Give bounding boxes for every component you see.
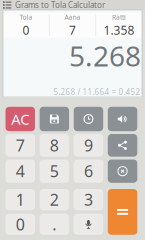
staticText: 8 <box>50 135 59 156</box>
staticText: 7 <box>69 22 76 38</box>
button[interactable]: 0 <box>5 214 35 235</box>
button[interactable]: 3 <box>74 189 103 210</box>
button[interactable]: . <box>40 214 69 235</box>
staticText: 5.268 <box>69 37 141 74</box>
staticText: AC <box>11 109 29 129</box>
staticText: Ratti <box>112 13 126 22</box>
button[interactable]: 8 <box>40 134 69 157</box>
button[interactable]: Share <box>108 134 137 157</box>
staticText: 1 <box>16 189 25 210</box>
button[interactable]: AC <box>5 107 35 131</box>
staticText: 0 <box>16 214 25 235</box>
staticText: 9 <box>84 135 93 156</box>
staticText: Grams to Tola Calculator <box>15 0 105 10</box>
button[interactable]: Save <box>40 107 69 131</box>
staticText: Tola <box>19 13 32 22</box>
staticText: 2 <box>50 189 59 210</box>
staticText: 0 <box>22 22 29 38</box>
button[interactable]: Delete <box>108 159 137 183</box>
button[interactable]: 5 <box>40 159 69 183</box>
button[interactable]: Equals <box>108 189 137 235</box>
staticText: 5 <box>50 160 59 182</box>
button[interactable]: 2 <box>40 189 69 210</box>
button[interactable]: 1 <box>5 189 35 210</box>
button[interactable]: 7 <box>5 134 35 157</box>
button[interactable]: Voice input <box>74 214 103 235</box>
button[interactable]: 6 <box>74 159 103 183</box>
button[interactable]: History <box>74 107 103 131</box>
staticText: 6 <box>84 160 93 182</box>
button[interactable]: 9 <box>74 134 103 157</box>
staticText: 7 <box>16 135 25 156</box>
staticText: 1.358 <box>104 22 135 38</box>
staticText: . <box>52 214 56 235</box>
staticText: 3 <box>84 189 93 210</box>
button[interactable]: Menu <box>3 0 11 10</box>
button[interactable]: 4 <box>5 159 35 183</box>
button[interactable]: Sound <box>108 107 137 131</box>
staticText: Aana <box>64 13 80 22</box>
staticText: 5.268 / 11.664 = 0.452 <box>53 87 140 97</box>
staticText: 4 <box>16 160 25 182</box>
